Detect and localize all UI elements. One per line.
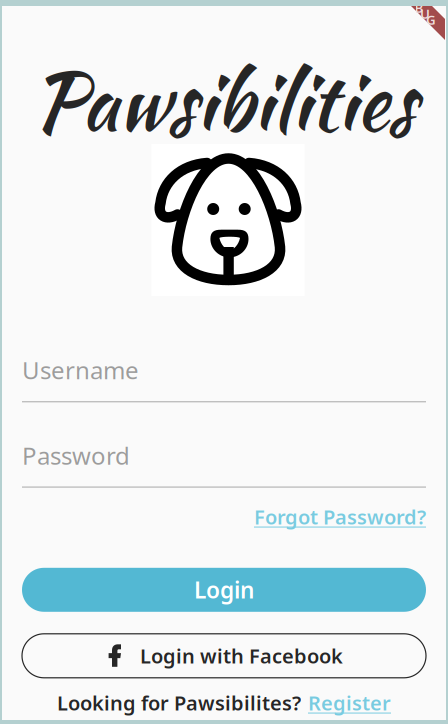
staticText: G [426, 11, 436, 28]
staticText: U [420, 5, 430, 22]
staticText: B [414, 0, 423, 16]
button[interactable]: Register [308, 689, 391, 716]
staticText: Username [22, 354, 139, 386]
staticText: Pawsibilities [32, 43, 416, 159]
staticText: Login with Facebook [140, 642, 343, 669]
button[interactable]: Forgot Password? [254, 503, 426, 531]
button[interactable]: Login [22, 568, 426, 612]
staticText: Password [22, 439, 130, 471]
staticText: Forgot Password? [254, 503, 426, 530]
button[interactable]: Login with Facebook [22, 634, 426, 678]
staticText: Login [194, 575, 254, 605]
staticText: Register [308, 689, 391, 716]
staticText: Looking for Pawsibilites? [57, 689, 301, 716]
